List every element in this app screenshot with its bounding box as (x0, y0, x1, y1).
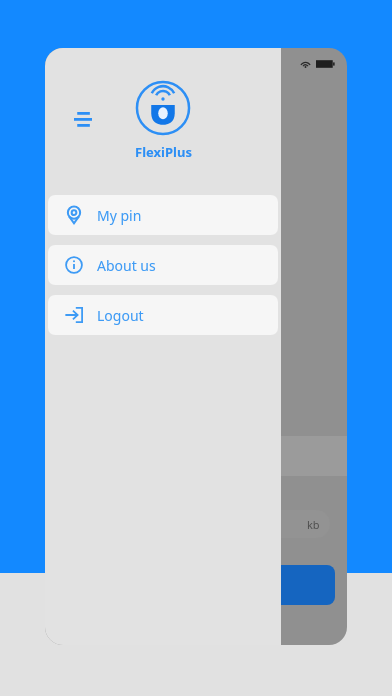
staticText: About us (97, 256, 156, 275)
staticText: kb (307, 517, 320, 532)
button[interactable]: About us (48, 245, 278, 285)
button[interactable]: My pin (48, 195, 278, 235)
button[interactable]: Close menu (57, 93, 109, 145)
staticText: Logout (97, 306, 144, 325)
staticText: My pin (97, 206, 142, 225)
staticText: FlexiPlus (135, 143, 192, 161)
button[interactable]: Logout (48, 295, 278, 335)
